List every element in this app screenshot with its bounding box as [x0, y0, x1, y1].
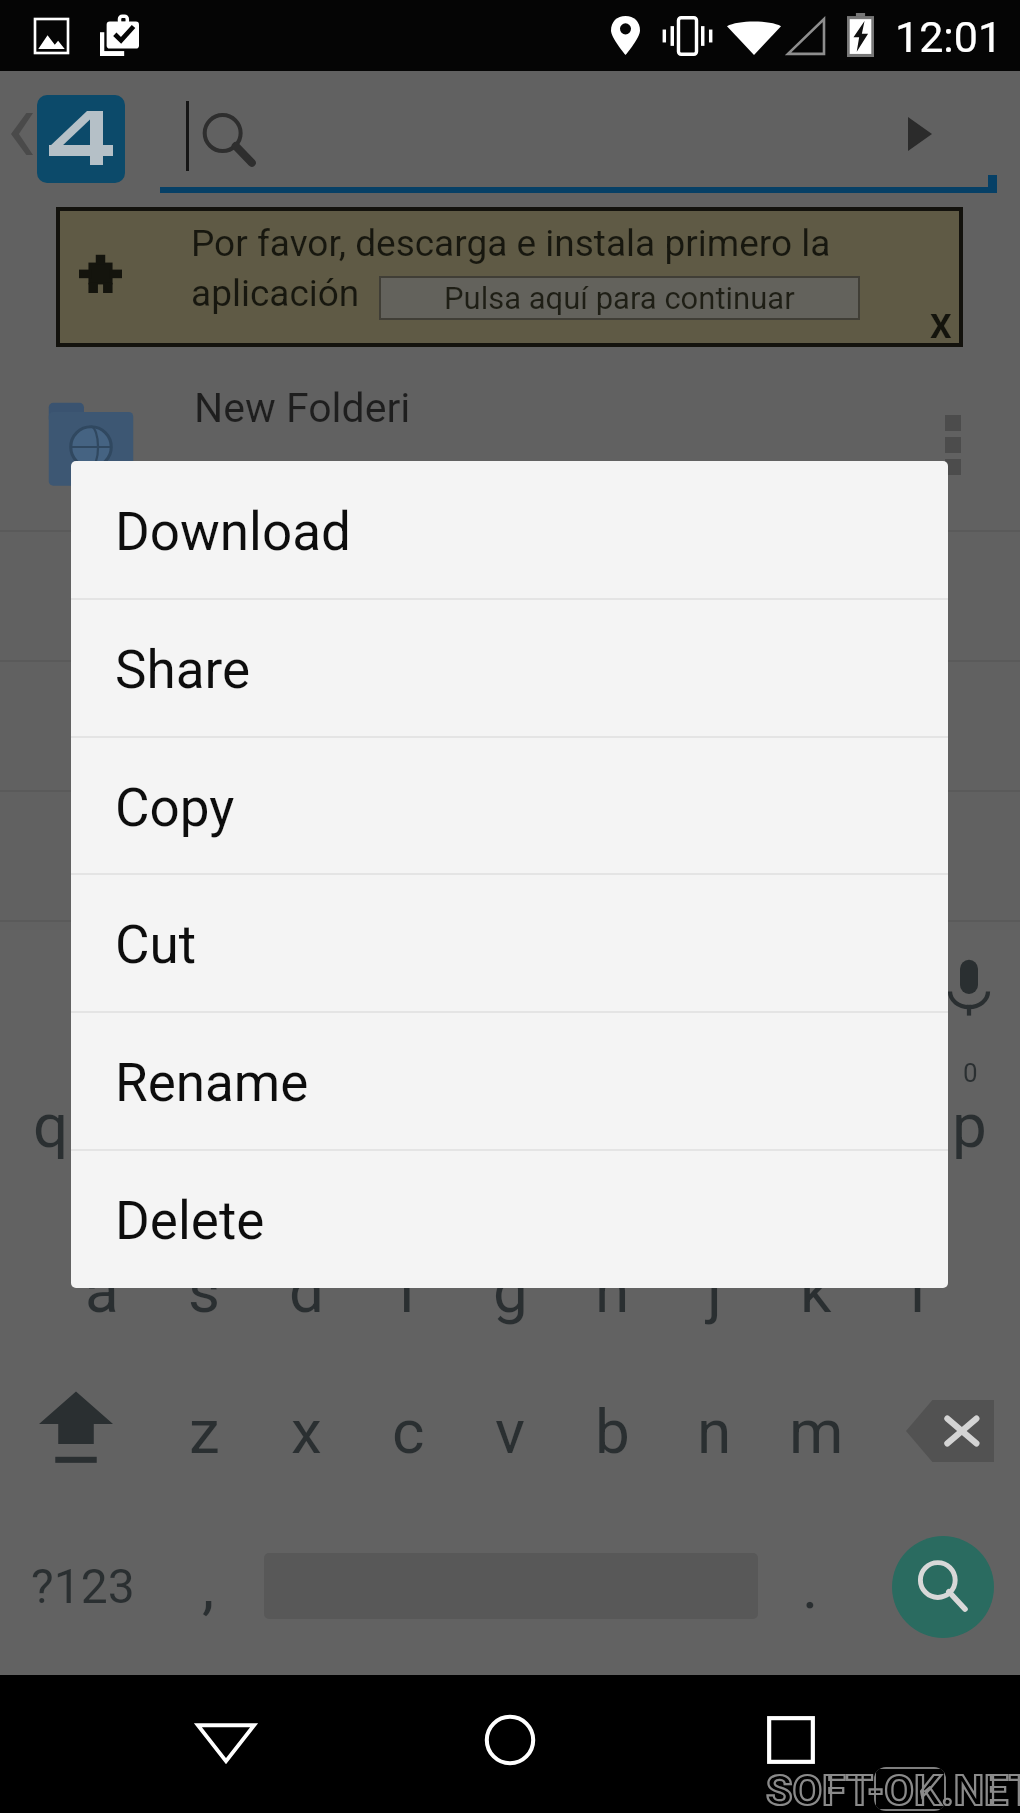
button[interactable]: j: [663, 1233, 765, 1347]
staticText: p: [952, 1089, 987, 1162]
staticText: 12:01: [895, 12, 1003, 62]
button[interactable]: Backspace: [894, 1374, 1006, 1488]
button[interactable]: Voice input: [944, 952, 994, 1012]
staticText: Copy: [115, 777, 235, 839]
button[interactable]: Pulsa aquí para continuar: [381, 278, 858, 318]
button[interactable]: Rename: [71, 1012, 948, 1150]
staticText: w: [130, 1089, 177, 1162]
button[interactable]: Cut: [71, 874, 948, 1012]
staticText: a: [85, 1254, 119, 1327]
button[interactable]: 4shared: [37, 95, 125, 183]
staticText: Download: [115, 501, 351, 563]
button[interactable]: p: [918, 1068, 1020, 1182]
button[interactable]: k: [765, 1233, 867, 1347]
button[interactable]: x: [255, 1374, 357, 1488]
button[interactable]: [0, 532, 1020, 660]
button[interactable]: Por favor, descarga e instala primero la: [60, 211, 959, 343]
button[interactable]: Copy: [71, 737, 948, 875]
button[interactable]: Share: [71, 599, 948, 737]
button[interactable]: v: [459, 1374, 561, 1488]
staticText: z: [189, 1395, 220, 1468]
button[interactable]: Delete: [71, 1150, 948, 1288]
button[interactable]: c: [357, 1374, 459, 1488]
staticText: New Folderi: [194, 384, 411, 432]
staticText: Delete: [115, 1190, 265, 1252]
button[interactable]: n: [663, 1374, 765, 1488]
button[interactable]: [0, 792, 1020, 920]
staticText: k: [800, 1254, 832, 1327]
staticText: l: [910, 1254, 926, 1327]
staticText: Por favor, descarga e instala primero la: [191, 222, 831, 265]
button[interactable]: z: [153, 1374, 255, 1488]
staticText: n: [697, 1395, 732, 1468]
staticText: X: [930, 306, 952, 344]
button[interactable]: Close ad: [917, 306, 965, 344]
button[interactable]: ,: [160, 1529, 256, 1643]
button[interactable]: m: [765, 1374, 867, 1488]
staticText: x: [291, 1395, 322, 1468]
button[interactable]: Home: [468, 1698, 552, 1782]
button[interactable]: Back: [184, 1698, 268, 1782]
button[interactable]: g: [459, 1233, 561, 1347]
staticText: aplicación: [191, 272, 360, 315]
button[interactable]: w: [102, 1068, 204, 1182]
button[interactable]: Shift: [20, 1374, 132, 1488]
staticText: f: [397, 1254, 419, 1327]
button[interactable]: l: [867, 1233, 969, 1347]
button[interactable]: Back: [0, 103, 44, 165]
staticText: Pulsa aquí para continuar: [444, 280, 795, 316]
button[interactable]: f: [357, 1233, 459, 1347]
staticText: h: [595, 1254, 630, 1327]
staticText: 0: [963, 1058, 978, 1088]
staticText: .: [802, 1550, 819, 1623]
button[interactable]: q: [0, 1068, 102, 1182]
staticText: m: [789, 1395, 844, 1468]
button[interactable]: More options: [925, 415, 981, 495]
button[interactable]: Recent apps: [749, 1698, 833, 1782]
staticText: SOFT-OK.NET: [766, 1765, 1020, 1813]
button[interactable]: [0, 402, 1020, 530]
button[interactable]: [0, 662, 1020, 790]
button[interactable]: b: [561, 1374, 663, 1488]
button[interactable]: Search: [892, 1536, 994, 1638]
staticText: ,: [202, 1550, 215, 1623]
staticText: Rename: [115, 1052, 309, 1114]
staticText: ?123: [31, 1558, 135, 1614]
staticText: d: [289, 1254, 324, 1327]
button[interactable]: e: [204, 1068, 306, 1182]
button[interactable]: a: [51, 1233, 153, 1347]
button[interactable]: s: [153, 1233, 255, 1347]
staticText: b: [595, 1395, 630, 1468]
staticText: Cut: [115, 914, 197, 976]
button[interactable]: h: [561, 1233, 663, 1347]
staticText: g: [493, 1254, 528, 1327]
button[interactable]: Download: [71, 461, 948, 599]
button[interactable]: ?123: [10, 1529, 156, 1643]
button[interactable]: d: [255, 1233, 357, 1347]
button[interactable]: New Folderi: [0, 358, 1020, 473]
staticText: q: [33, 1089, 69, 1162]
staticText: j: [707, 1254, 722, 1327]
staticText: s: [188, 1254, 220, 1327]
staticText: Share: [115, 639, 251, 701]
staticText: v: [495, 1395, 526, 1468]
staticText: e: [239, 1089, 272, 1162]
staticText: c: [392, 1395, 425, 1468]
